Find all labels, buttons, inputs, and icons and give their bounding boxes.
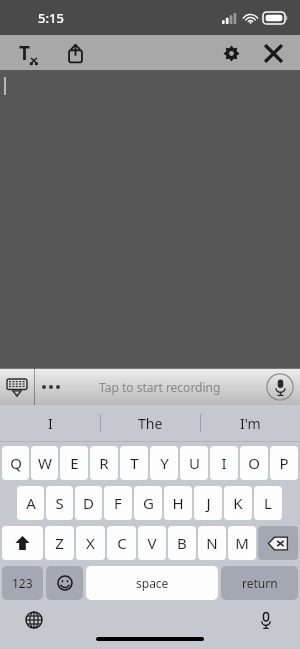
button[interactable]: P	[270, 446, 298, 480]
staticText: I'm	[240, 414, 261, 433]
staticText: I	[221, 453, 227, 473]
staticText: X	[86, 533, 95, 553]
button[interactable]: T	[120, 446, 148, 480]
button[interactable]: Y	[150, 446, 178, 480]
button[interactable]: return	[221, 566, 298, 600]
staticText: U	[189, 453, 200, 473]
button[interactable]: J	[194, 486, 222, 520]
button[interactable]: I	[0, 405, 100, 441]
staticText: Z	[55, 533, 64, 553]
staticText: K	[233, 493, 243, 513]
button[interactable]: Share	[60, 38, 90, 68]
button[interactable]: L	[254, 486, 282, 520]
button[interactable]: I	[210, 446, 238, 480]
button[interactable]: More options	[38, 369, 64, 405]
staticText: V	[147, 533, 157, 553]
button[interactable]: G	[134, 486, 162, 520]
button[interactable]: V	[138, 526, 166, 560]
staticText: T	[19, 40, 30, 66]
staticText: Tap to start recording	[99, 379, 221, 395]
button[interactable]: U	[180, 446, 208, 480]
button[interactable]: C	[107, 526, 136, 560]
staticText: M	[235, 533, 249, 553]
button[interactable]: N	[198, 526, 226, 560]
button[interactable]: Record	[266, 373, 294, 401]
staticText: W	[38, 453, 52, 473]
staticText: B	[177, 533, 187, 553]
staticText: space	[136, 575, 169, 591]
button[interactable]: E	[60, 446, 88, 480]
staticText: C	[117, 533, 127, 553]
button[interactable]: B	[168, 526, 196, 560]
button[interactable]: 123	[2, 566, 43, 600]
button[interactable]: W	[31, 446, 58, 480]
button[interactable]: I'm	[201, 405, 300, 441]
button[interactable]: Close	[258, 38, 288, 68]
button[interactable]: Settings	[216, 38, 246, 68]
staticText: O	[248, 453, 260, 473]
staticText: P	[279, 453, 289, 473]
staticText: R	[99, 453, 109, 473]
button[interactable]: D	[75, 486, 102, 520]
staticText: J	[206, 493, 211, 513]
button[interactable]: S	[46, 486, 73, 520]
button[interactable]: Dictation	[252, 606, 280, 634]
staticText: 5:15	[38, 9, 64, 27]
staticText: G	[143, 493, 154, 513]
button[interactable]: O	[240, 446, 268, 480]
button[interactable]: H	[164, 486, 192, 520]
button[interactable]: M	[228, 526, 256, 560]
staticText: N	[206, 533, 218, 553]
staticText: H	[172, 493, 184, 513]
button[interactable]: Clear formatting	[12, 38, 46, 68]
button[interactable]: R	[90, 446, 118, 480]
button[interactable]: The	[101, 405, 200, 441]
button[interactable]: Q	[2, 446, 29, 480]
button[interactable]: Z	[45, 526, 74, 560]
button[interactable]: Shift	[2, 526, 43, 560]
staticText: L	[264, 493, 272, 513]
staticText: I	[48, 414, 53, 433]
staticText: A	[26, 493, 36, 513]
button[interactable]: Change keyboard language	[20, 606, 48, 634]
staticText: F	[114, 493, 122, 513]
button[interactable]: A	[17, 486, 44, 520]
button[interactable]: F	[104, 486, 132, 520]
button[interactable]: Backspace	[258, 526, 298, 560]
staticText: T	[130, 453, 139, 473]
staticText: D	[83, 493, 94, 513]
staticText: E	[70, 453, 79, 473]
staticText: S	[55, 493, 64, 513]
staticText: 123	[12, 575, 33, 591]
button[interactable]: X	[76, 526, 105, 560]
staticText: The	[138, 414, 163, 433]
button[interactable]: space	[86, 566, 218, 600]
staticText: Q	[10, 453, 22, 473]
button[interactable]: Hide keyboard	[0, 369, 34, 405]
staticText: Y	[160, 453, 169, 473]
staticText: return	[242, 575, 278, 591]
button[interactable]: K	[224, 486, 252, 520]
button[interactable]: Emoji	[46, 566, 83, 600]
